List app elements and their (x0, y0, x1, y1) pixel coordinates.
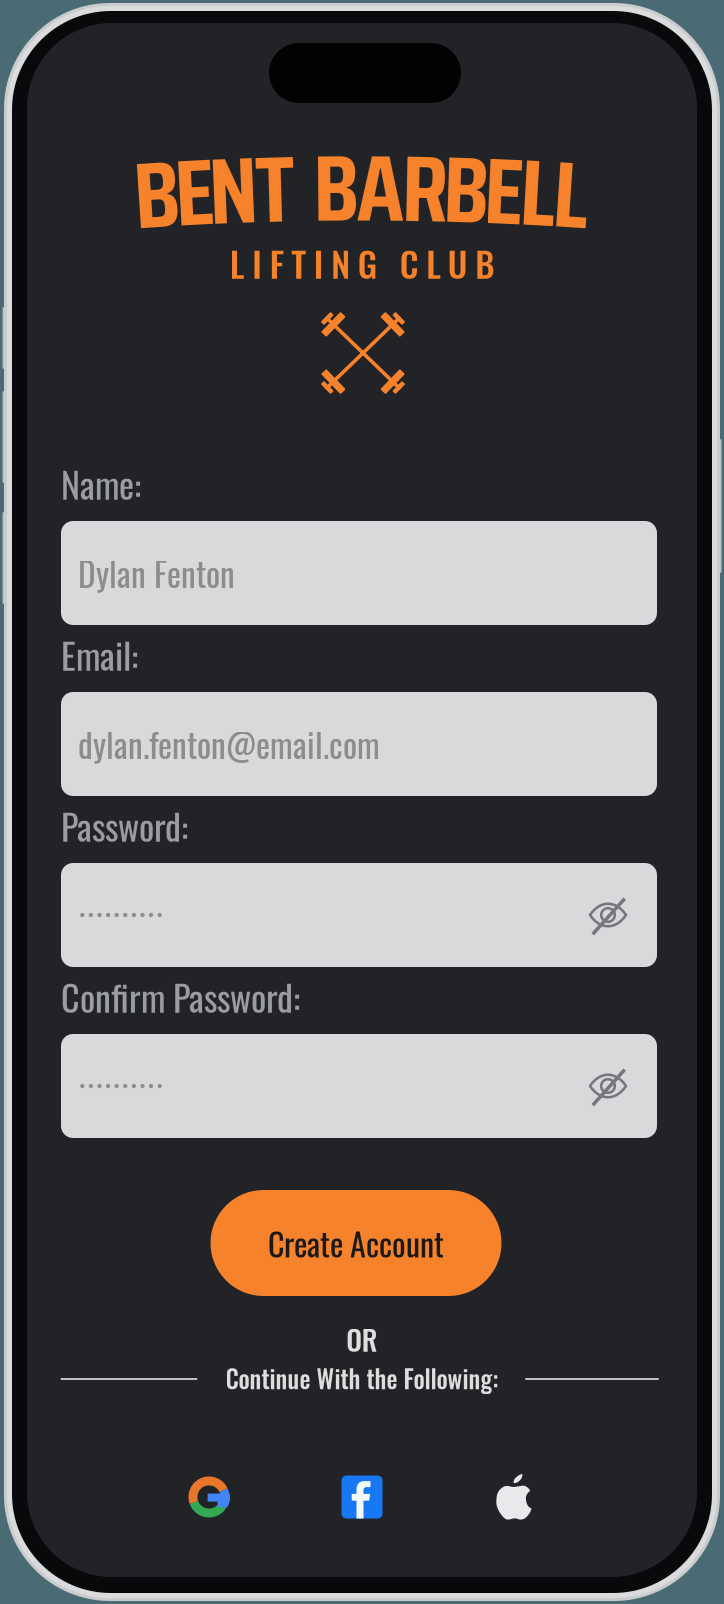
staticText: Create Account (268, 1219, 444, 1267)
button[interactable]: Name: (61, 466, 657, 625)
staticText: T (255, 116, 294, 263)
button[interactable]: Continue with Facebook (341, 1475, 382, 1518)
staticText: B (313, 115, 359, 262)
button[interactable]: Create Account (210, 1190, 501, 1296)
staticText: Name: (61, 457, 141, 510)
staticText: N (209, 117, 258, 264)
staticText: B (443, 116, 489, 263)
staticText: L (520, 119, 556, 266)
staticText: L (553, 121, 589, 268)
staticText: Email: (61, 628, 138, 681)
staticText: LIFTING CLUB (230, 237, 494, 289)
staticText: Dylan Fenton (78, 548, 235, 598)
staticText: dylan.fenton@email.com (78, 719, 380, 769)
button[interactable]: Password: (61, 808, 657, 967)
button[interactable]: Continue with Google (188, 1476, 230, 1518)
staticText: Password: (61, 799, 188, 852)
staticText: E (484, 118, 524, 265)
staticText: B (134, 121, 180, 268)
staticText: Continue With the Following: (225, 1360, 498, 1396)
button[interactable]: Email: (61, 637, 657, 796)
staticText: OR (346, 1318, 378, 1360)
staticText: E (175, 119, 215, 266)
staticText: Confirm Password: (61, 970, 300, 1023)
staticText: R (402, 115, 448, 262)
button[interactable]: Confirm Password: (61, 979, 657, 1138)
staticText: A (357, 115, 404, 261)
button[interactable]: Continue with Apple (492, 1474, 536, 1520)
